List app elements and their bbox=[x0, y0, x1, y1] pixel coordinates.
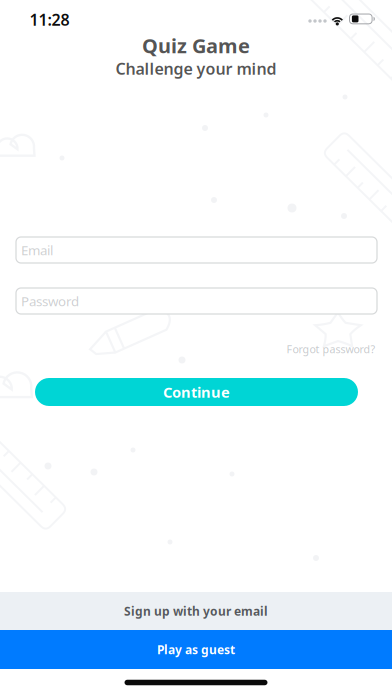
button[interactable]: Forgot password? bbox=[283, 338, 378, 360]
button[interactable]: Email bbox=[16, 237, 377, 263]
button[interactable]: Password bbox=[16, 288, 377, 314]
staticText: Sign up with your email bbox=[124, 603, 268, 619]
staticText: Play as guest bbox=[157, 641, 235, 657]
staticText: Quiz Game bbox=[142, 32, 250, 59]
staticText: Forgot password? bbox=[286, 342, 375, 356]
staticText: 11:28 bbox=[29, 9, 69, 30]
button[interactable]: Sign up with your email bbox=[0, 592, 392, 630]
button[interactable]: Play as guest bbox=[0, 630, 392, 669]
staticText: Email bbox=[21, 241, 53, 259]
button[interactable]: Continue bbox=[35, 378, 358, 406]
staticText: Challenge your mind bbox=[115, 58, 276, 79]
staticText: Password bbox=[21, 292, 79, 310]
staticText: Continue bbox=[163, 382, 230, 402]
